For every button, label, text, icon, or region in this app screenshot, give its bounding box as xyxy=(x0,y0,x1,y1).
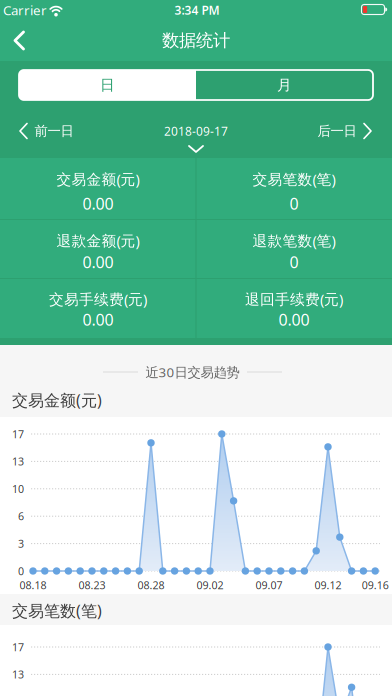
staticText: 3:34 PM xyxy=(174,2,219,18)
staticText: 交易笔数(笔) xyxy=(12,600,102,621)
button[interactable]: 后一日 xyxy=(317,122,372,139)
staticText: 0 xyxy=(289,251,298,273)
staticText: 09.12 xyxy=(314,578,341,592)
staticText: 13 xyxy=(12,454,24,468)
staticText: 数据统计 xyxy=(162,30,230,51)
staticText: 08.18 xyxy=(19,578,46,592)
staticText: 交易金额(元) xyxy=(12,389,102,411)
staticText: 13 xyxy=(12,667,24,681)
staticText: 0.00 xyxy=(82,309,113,330)
staticText: 交易手续费(元) xyxy=(49,289,147,309)
button[interactable]: Back xyxy=(4,30,34,51)
staticText: 交易笔数(笔) xyxy=(252,169,335,189)
staticText: Carrier xyxy=(3,1,47,19)
staticText: 月 xyxy=(277,76,292,94)
button[interactable]: 日 xyxy=(19,70,196,100)
staticText: 2018-09-17 xyxy=(164,123,228,139)
staticText: 6 xyxy=(18,509,24,523)
staticText: 前一日 xyxy=(34,123,73,139)
staticText: 0.00 xyxy=(278,309,309,330)
staticText: 后一日 xyxy=(317,123,356,139)
staticText: 0.00 xyxy=(82,251,113,273)
staticText: 17 xyxy=(12,427,24,441)
staticText: 09.16 xyxy=(362,578,389,592)
staticText: 08.23 xyxy=(78,578,105,592)
staticText: 10 xyxy=(12,482,24,496)
staticText: 日 xyxy=(100,76,115,94)
staticText: 0 xyxy=(18,564,24,578)
staticText: 退回手续费(元) xyxy=(245,289,343,309)
staticText: 08.28 xyxy=(137,578,164,592)
staticText: 0.00 xyxy=(82,193,113,214)
staticText: 退款笔数(笔) xyxy=(252,231,335,250)
staticText: 09.02 xyxy=(196,578,223,592)
staticText: 09.07 xyxy=(255,578,282,592)
button[interactable]: 2018-09-17 xyxy=(164,123,228,153)
button[interactable]: 月 xyxy=(196,70,373,100)
staticText: 退款金额(元) xyxy=(56,231,139,250)
button[interactable]: 前一日 xyxy=(18,122,73,139)
staticText: 3 xyxy=(18,536,24,551)
staticText: 交易金额(元) xyxy=(56,169,139,189)
staticText: 17 xyxy=(12,640,24,654)
staticText: 近30日交易趋势 xyxy=(145,363,239,381)
staticText: 0 xyxy=(289,193,298,214)
